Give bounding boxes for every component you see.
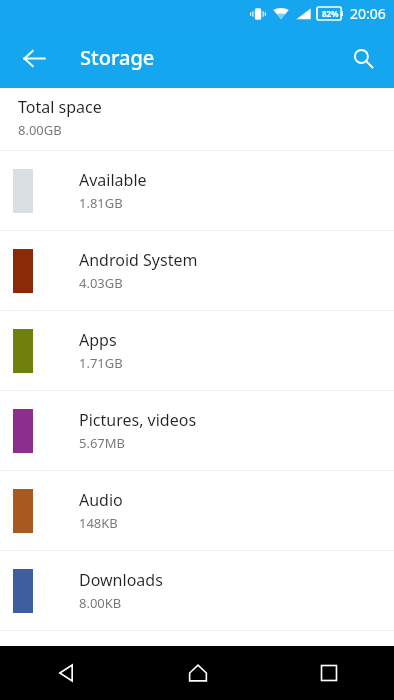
staticText: Downloads xyxy=(79,569,163,591)
staticText: 82% xyxy=(322,8,339,19)
staticText: 8.00KB xyxy=(79,594,122,612)
staticText: 20:06 xyxy=(350,4,386,23)
button[interactable]: Recent apps xyxy=(263,646,394,700)
button[interactable]: Back xyxy=(0,646,132,700)
button[interactable]: Android System xyxy=(0,231,394,310)
staticText: Available xyxy=(79,169,147,191)
button[interactable]: Audio xyxy=(0,471,394,550)
button[interactable]: Home xyxy=(132,646,263,700)
staticText: Audio xyxy=(79,489,123,511)
button[interactable]: Total space xyxy=(0,88,394,150)
staticText: Pictures, videos xyxy=(79,409,197,431)
staticText: Apps xyxy=(79,329,117,351)
staticText: Storage xyxy=(80,44,155,71)
staticText: 5.67MB xyxy=(79,434,126,452)
button[interactable]: Apps xyxy=(0,311,394,390)
staticText: 4.03GB xyxy=(79,274,123,292)
button[interactable]: Downloads xyxy=(0,551,394,630)
button[interactable]: Pictures, videos xyxy=(0,391,394,470)
staticText: 1.71GB xyxy=(79,354,123,372)
staticText: Android System xyxy=(79,249,198,271)
staticText: Total space xyxy=(18,96,102,118)
staticText: 8.00GB xyxy=(18,121,62,139)
button[interactable]: Back xyxy=(12,36,56,80)
button[interactable]: Available xyxy=(0,151,394,230)
staticText: 1.81GB xyxy=(79,194,123,212)
button[interactable]: Search xyxy=(341,36,385,80)
staticText: 148KB xyxy=(79,514,118,532)
